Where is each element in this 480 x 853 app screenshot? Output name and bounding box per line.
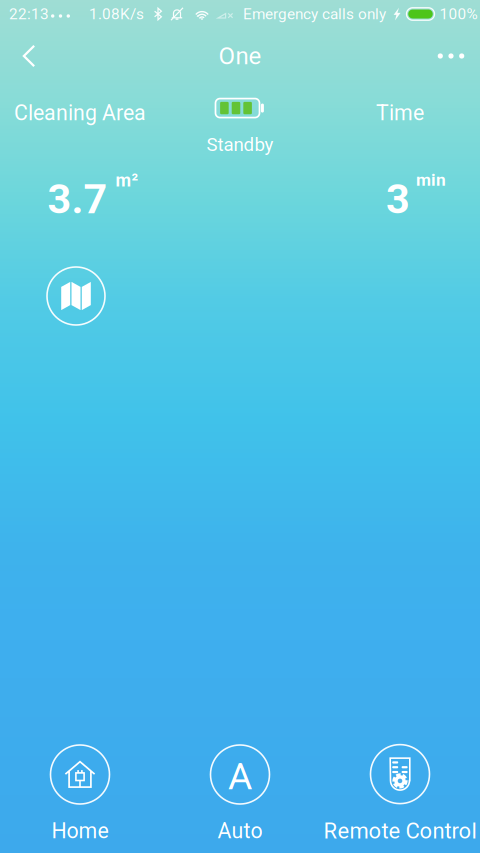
staticText: Home [51,818,108,843]
staticText: 100% [439,5,477,23]
staticText: 3 [386,175,410,223]
staticText: Standby [206,134,273,155]
button[interactable]: A [160,744,320,844]
button[interactable]: Back [7,34,51,78]
staticText: min [416,170,446,190]
staticText: Cleaning Area [14,100,146,125]
staticText: Time [376,100,424,125]
button[interactable]: Remote Control [320,744,480,844]
button[interactable]: Home [0,744,160,844]
staticText: Emergency calls only [243,5,386,23]
staticText: A [228,755,252,798]
staticText: 1.08K/s [89,5,144,23]
button[interactable]: More options [429,34,473,78]
staticText: m² [115,170,138,191]
staticText: 22:13 [9,5,49,23]
staticText: Auto [217,818,262,843]
button[interactable]: Map [45,265,107,327]
staticText: 3.7 [47,175,107,223]
staticText: One [218,42,261,70]
staticText: Remote Control [323,818,476,844]
